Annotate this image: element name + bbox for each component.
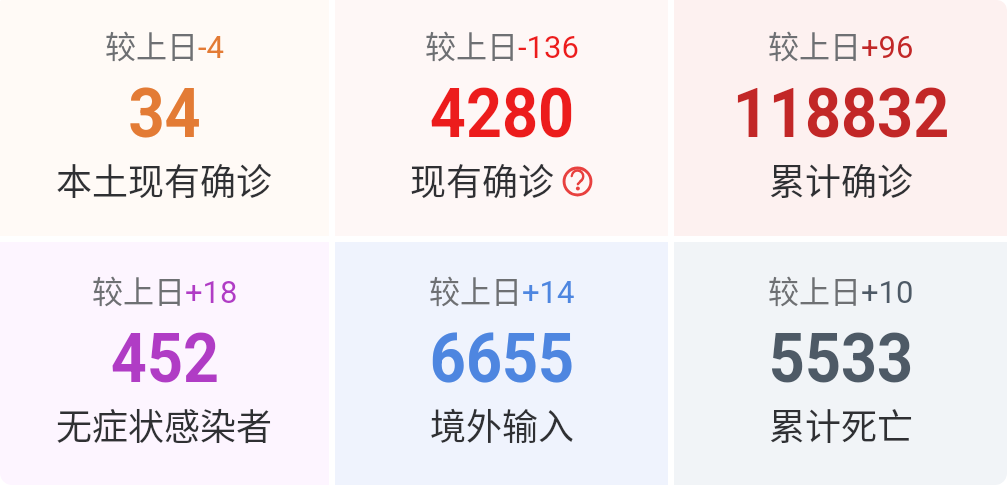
staticText: 较上日+10 bbox=[768, 267, 914, 312]
staticText: 本土现有确诊 bbox=[56, 153, 273, 205]
staticText: 452 bbox=[111, 318, 219, 398]
staticText: 累计确诊 bbox=[769, 153, 914, 205]
button[interactable]: 较上日+10 bbox=[674, 242, 1007, 485]
button[interactable]: 较上日-136 bbox=[335, 0, 668, 236]
staticText: 较上日+14 bbox=[429, 267, 575, 312]
staticText: 累计死亡 bbox=[769, 398, 914, 450]
staticText: 较上日+96 bbox=[768, 22, 914, 67]
staticText: 无症状感染者 bbox=[56, 398, 273, 450]
staticText: 现有确诊 bbox=[410, 153, 555, 205]
staticText: 6655 bbox=[429, 318, 575, 398]
button[interactable]: 较上日-4 bbox=[0, 0, 329, 236]
staticText: 4280 bbox=[429, 73, 575, 153]
staticText: 较上日+18 bbox=[92, 267, 238, 312]
button[interactable]: 较上日+18 bbox=[0, 242, 329, 485]
staticText: 较上日-136 bbox=[425, 22, 579, 67]
button[interactable]: 较上日+96 bbox=[674, 0, 1007, 236]
button[interactable]: 较上日+14 bbox=[335, 242, 668, 485]
staticText: 5533 bbox=[768, 318, 914, 398]
staticText: 118832 bbox=[733, 73, 949, 153]
button[interactable]: 现有确诊说明 bbox=[562, 166, 593, 197]
staticText: 较上日-4 bbox=[105, 22, 224, 67]
staticText: 境外输入 bbox=[430, 398, 575, 450]
staticText: 34 bbox=[128, 73, 201, 153]
